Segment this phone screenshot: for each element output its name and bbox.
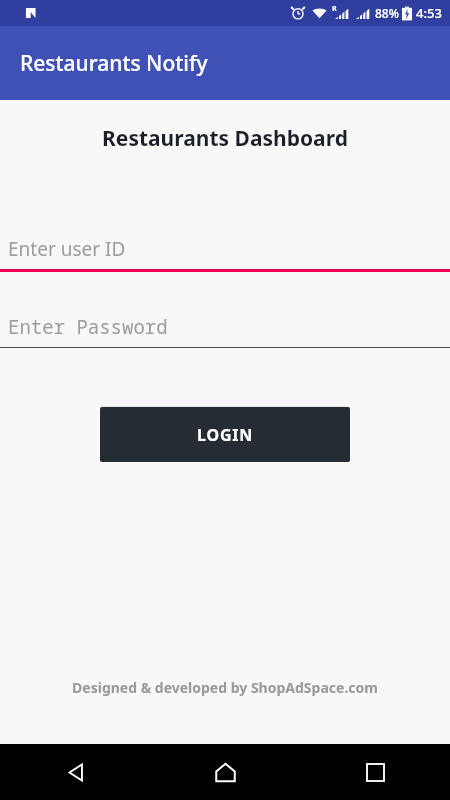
- staticText: R: [332, 4, 337, 14]
- staticText: Enter user ID: [8, 236, 126, 262]
- button[interactable]: LOGIN: [100, 407, 350, 462]
- button[interactable]: Recent apps: [300, 744, 450, 800]
- button[interactable]: Enter Password: [0, 314, 450, 348]
- button[interactable]: Home: [150, 744, 300, 800]
- staticText: Restaurants Dashboard: [0, 124, 450, 153]
- staticText: Restaurants Notify: [20, 49, 208, 78]
- button[interactable]: Enter user ID: [0, 236, 450, 272]
- staticText: Designed & developed by ShopAdSpace.com: [0, 678, 450, 697]
- staticText: Enter Password: [8, 314, 168, 340]
- button[interactable]: Back: [0, 744, 150, 800]
- staticText: 88%: [375, 5, 399, 21]
- staticText: 4:53: [416, 4, 442, 22]
- staticText: LOGIN: [197, 424, 254, 446]
